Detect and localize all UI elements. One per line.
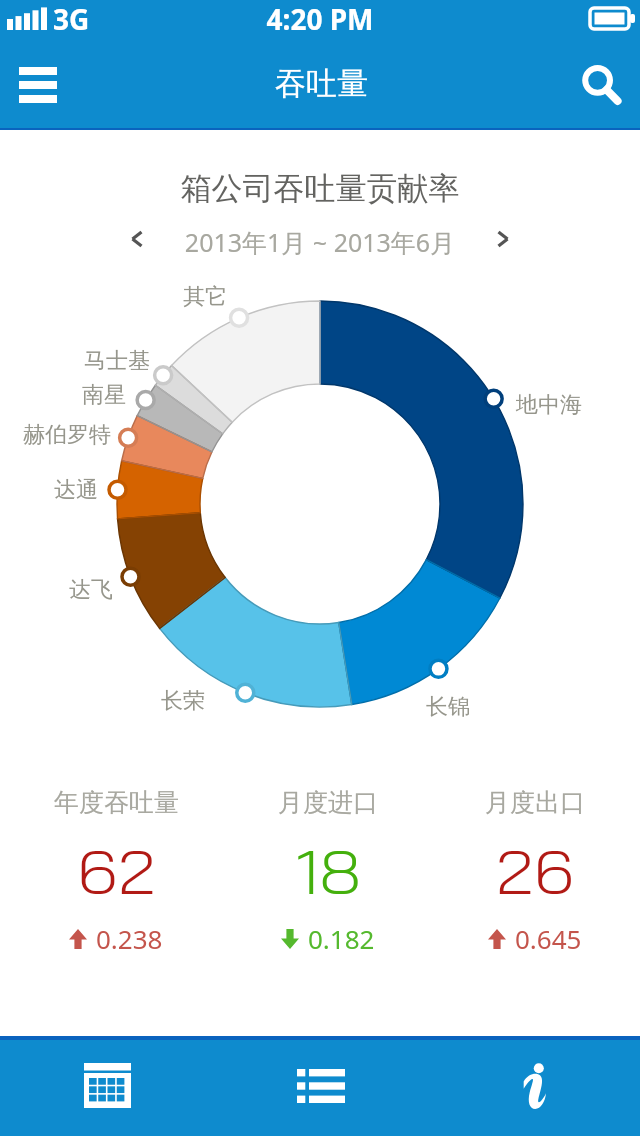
staticText: 月度进口 xyxy=(278,787,378,818)
staticText: 其它 xyxy=(183,283,227,311)
staticText: 箱公司吞吐量贡献率 xyxy=(0,169,640,208)
staticText: 马士基 xyxy=(84,347,150,375)
button[interactable]: List xyxy=(214,1040,427,1136)
staticText: 3G xyxy=(53,0,90,38)
staticText: 达通 xyxy=(54,476,98,504)
button[interactable]: Search xyxy=(570,51,630,111)
staticText: 2013年1月 ~ 2013年6月 xyxy=(0,225,640,259)
staticText: 62 xyxy=(77,833,156,909)
staticText: 长荣 xyxy=(161,687,205,715)
staticText: 赫伯罗特 xyxy=(23,421,111,449)
button[interactable]: Menu xyxy=(8,54,68,114)
staticText: 南星 xyxy=(82,381,126,409)
staticText: 长锦 xyxy=(426,693,470,721)
staticText: 达飞 xyxy=(69,576,113,604)
button[interactable]: Info xyxy=(427,1040,640,1136)
staticText: 月度出口 xyxy=(485,787,585,818)
staticText: 4:20 PM xyxy=(0,0,640,38)
staticText: 18 xyxy=(295,833,362,909)
button[interactable]: Previous period xyxy=(115,217,159,261)
staticText: 26 xyxy=(496,833,575,909)
staticText: 0.238 xyxy=(96,921,163,956)
staticText: 吞吐量 xyxy=(275,64,368,103)
staticText: 年度吞吐量 xyxy=(54,787,179,818)
button[interactable]: Next period xyxy=(481,217,525,261)
button[interactable]: Table xyxy=(0,1040,214,1136)
staticText: 地中海 xyxy=(516,391,582,419)
staticText: 0.645 xyxy=(515,921,582,956)
staticText: 0.182 xyxy=(308,921,375,956)
